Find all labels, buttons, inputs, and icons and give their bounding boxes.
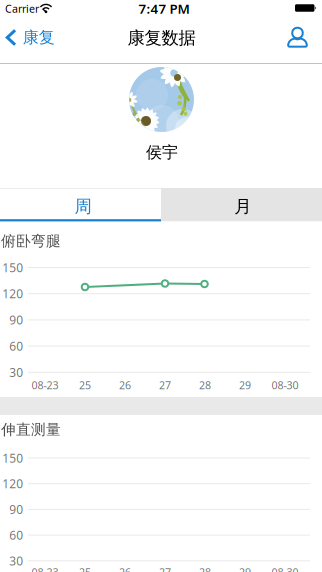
button[interactable]: 康复 [5,15,55,59]
staticText: 侯宇 [146,143,178,162]
staticText: 康复数据 [127,27,195,49]
staticText: 08-23 [31,378,58,392]
staticText: 60 [9,527,23,543]
staticText: 29 [239,565,251,572]
staticText: 08-30 [271,565,298,572]
button[interactable]: 月 [161,189,322,221]
staticText: 25 [79,565,91,572]
staticText: 周 [74,196,91,217]
staticText: 月 [234,196,251,217]
staticText: 28 [199,378,211,392]
staticText: 90 [9,501,23,517]
staticText: 150 [2,450,23,466]
staticText: 康复 [23,28,55,47]
staticText: 25 [79,378,91,392]
staticText: 120 [2,286,23,302]
staticText: 28 [199,565,211,572]
staticText: 26 [119,565,131,572]
staticText: 伸直测量 [1,420,61,438]
staticText: 60 [9,338,23,354]
staticText: 俯卧弯腿 [1,232,61,250]
button[interactable]: 联系人 [277,15,317,59]
staticText: 27 [159,565,171,572]
staticText: 26 [119,378,131,392]
staticText: 08-23 [31,565,58,572]
staticText: 90 [9,312,23,328]
staticText: 150 [2,259,23,275]
staticText: 30 [9,364,23,380]
staticText: Carrier [5,1,39,16]
staticText: 120 [2,476,23,492]
staticText: 29 [239,378,251,392]
staticText: 08-30 [271,378,298,392]
staticText: 27 [159,378,171,392]
staticText: 7:47 PM [138,0,189,17]
staticText: 30 [9,553,23,569]
button[interactable]: 周 [0,189,161,219]
